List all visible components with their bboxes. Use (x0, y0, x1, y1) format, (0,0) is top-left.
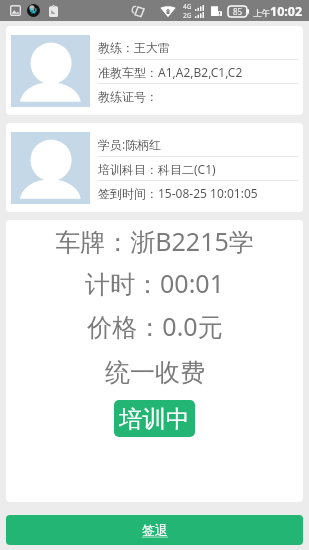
staticText: 价格：0.0元 (87, 309, 223, 343)
button[interactable]: 签退 (6, 515, 303, 545)
staticText: 签到时间：15-08-25 10:01:05 (98, 185, 258, 201)
staticText: 85 (233, 6, 243, 17)
staticText: 培训科目：科目二(C1) (98, 161, 216, 177)
staticText: 上午 (253, 8, 270, 19)
staticText: 学员:陈柄红 (98, 136, 162, 152)
staticText: 培训中 (119, 404, 190, 434)
staticText: 计时：00:01 (85, 266, 224, 300)
button[interactable]: 培训中 (114, 400, 195, 437)
staticText: 准教车型：A1,A2,B2,C1,C2 (98, 64, 243, 80)
staticText: 4G (183, 2, 192, 11)
staticText: 教练证号： (98, 89, 158, 104)
staticText: 教练：王大雷 (98, 40, 170, 55)
staticText: 10:02 (270, 3, 303, 20)
staticText: 2G (183, 11, 192, 20)
staticText: 统一收费 (105, 357, 205, 388)
staticText: 车牌：浙B2215学 (55, 224, 254, 258)
staticText: 签退 (142, 522, 168, 538)
